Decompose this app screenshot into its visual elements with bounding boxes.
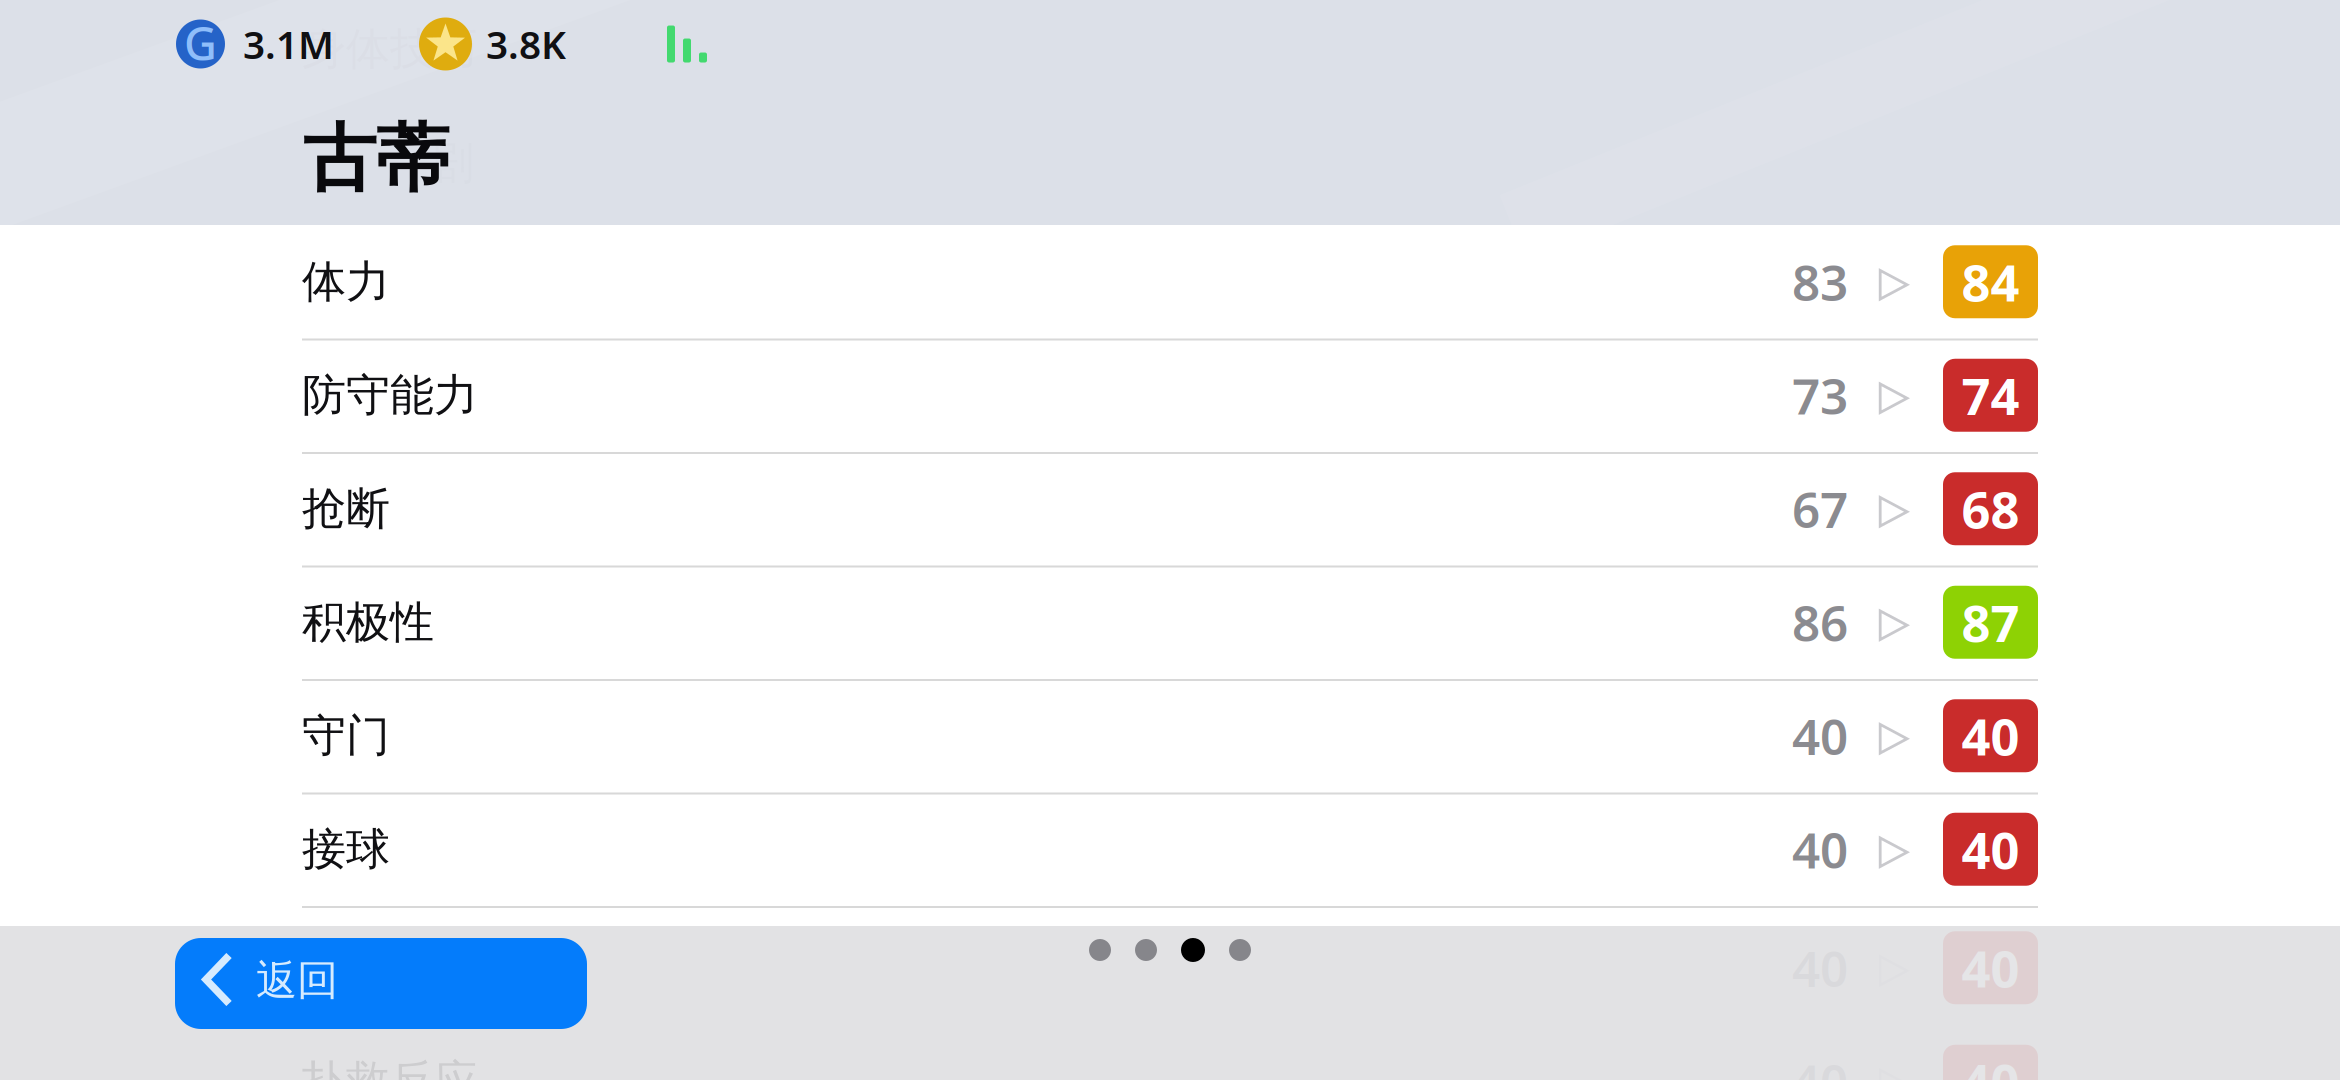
staticText: 抢断: [302, 482, 390, 536]
button[interactable]: Page 4: [1229, 939, 1251, 961]
staticText: 40: [1792, 935, 1848, 1000]
button[interactable]: 返回: [175, 938, 587, 1029]
button[interactable]: 积极性: [0, 565, 2340, 679]
staticText: 40: [1792, 1048, 1848, 1080]
staticText: 67: [1792, 476, 1848, 541]
staticText: 83: [1792, 249, 1848, 314]
staticText: 40: [1792, 816, 1848, 882]
staticText: 扑救反应: [302, 1054, 478, 1080]
staticText: 87: [1961, 589, 2019, 656]
staticText: 剧: [430, 136, 474, 190]
staticText: 40: [1961, 934, 2019, 1001]
staticText: 84: [1961, 248, 2019, 315]
staticText: 体力: [302, 255, 390, 309]
button[interactable]: 守门: [0, 679, 2340, 792]
staticText: 守门: [302, 709, 390, 763]
staticText: 73: [1792, 362, 1848, 428]
staticText: 身体技巧: [302, 22, 478, 76]
button[interactable]: Trend: [667, 22, 707, 65]
staticText: 积极性: [302, 595, 434, 649]
staticText: 40: [1961, 816, 2019, 883]
staticText: 40: [1961, 1048, 2019, 1080]
staticText: 3.1M: [243, 18, 334, 70]
button[interactable]: Page 3: [1181, 938, 1205, 962]
staticText: 古蒂: [303, 114, 449, 204]
staticText: 防守能力: [302, 368, 478, 422]
button[interactable]: Page 1: [1089, 939, 1111, 961]
button[interactable]: 体力: [0, 225, 2340, 338]
button[interactable]: Page 2: [1135, 939, 1157, 961]
staticText: 40: [1792, 703, 1848, 768]
button[interactable]: 防守能力: [0, 338, 2340, 452]
staticText: 74: [1961, 362, 2019, 429]
staticText: 40: [1961, 702, 2019, 769]
staticText: G: [184, 13, 217, 73]
button[interactable]: 接球: [0, 792, 2340, 906]
staticText: 86: [1792, 589, 1848, 655]
staticText: 3.8K: [486, 18, 566, 70]
staticText: 接球: [302, 822, 390, 876]
button[interactable]: G: [176, 14, 334, 74]
button[interactable]: 抢断: [0, 452, 2340, 565]
button[interactable]: 3.8K: [419, 17, 566, 70]
staticText: 返回: [256, 955, 338, 1006]
staticText: 68: [1961, 475, 2019, 542]
